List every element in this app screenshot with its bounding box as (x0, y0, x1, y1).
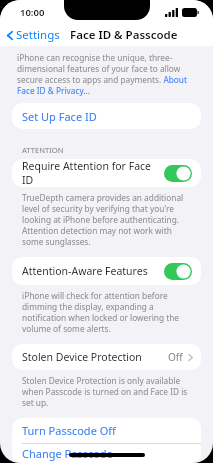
button[interactable]: Set Up Face ID (12, 103, 201, 129)
button[interactable]: Stolen Device Protection (12, 344, 201, 370)
staticText: Turn Passcode Off (22, 423, 116, 438)
staticText: Change Passcode (22, 446, 113, 461)
staticText: iPhone can recognise the unique, three-d… (17, 52, 199, 96)
button[interactable]: Change Passcode (12, 444, 201, 463)
staticText: Face ID & Passcode (70, 27, 178, 43)
button[interactable]: Settings (0, 25, 66, 45)
staticText: Set Up Face ID (22, 109, 97, 124)
staticText: iPhone will check for attention before d… (22, 290, 195, 334)
button[interactable]: Require Attention for Face ID (12, 159, 201, 187)
staticText: Stolen Device Protection (22, 350, 142, 364)
button[interactable]: Turn Passcode Off (12, 418, 201, 443)
staticText: Require Attention for Face ID (22, 159, 164, 187)
staticText: 10:00 (20, 6, 45, 19)
staticText: Attention-Aware Features (22, 264, 164, 278)
staticText: Off (168, 350, 183, 364)
button[interactable]: Attention-Aware Features (12, 257, 201, 285)
staticText: Stolen Device Protection is only availab… (22, 375, 195, 408)
staticText: TrueDepth camera provides an additional … (22, 192, 195, 247)
staticText: ATTENTION (22, 145, 64, 155)
staticText: Settings (16, 27, 60, 43)
